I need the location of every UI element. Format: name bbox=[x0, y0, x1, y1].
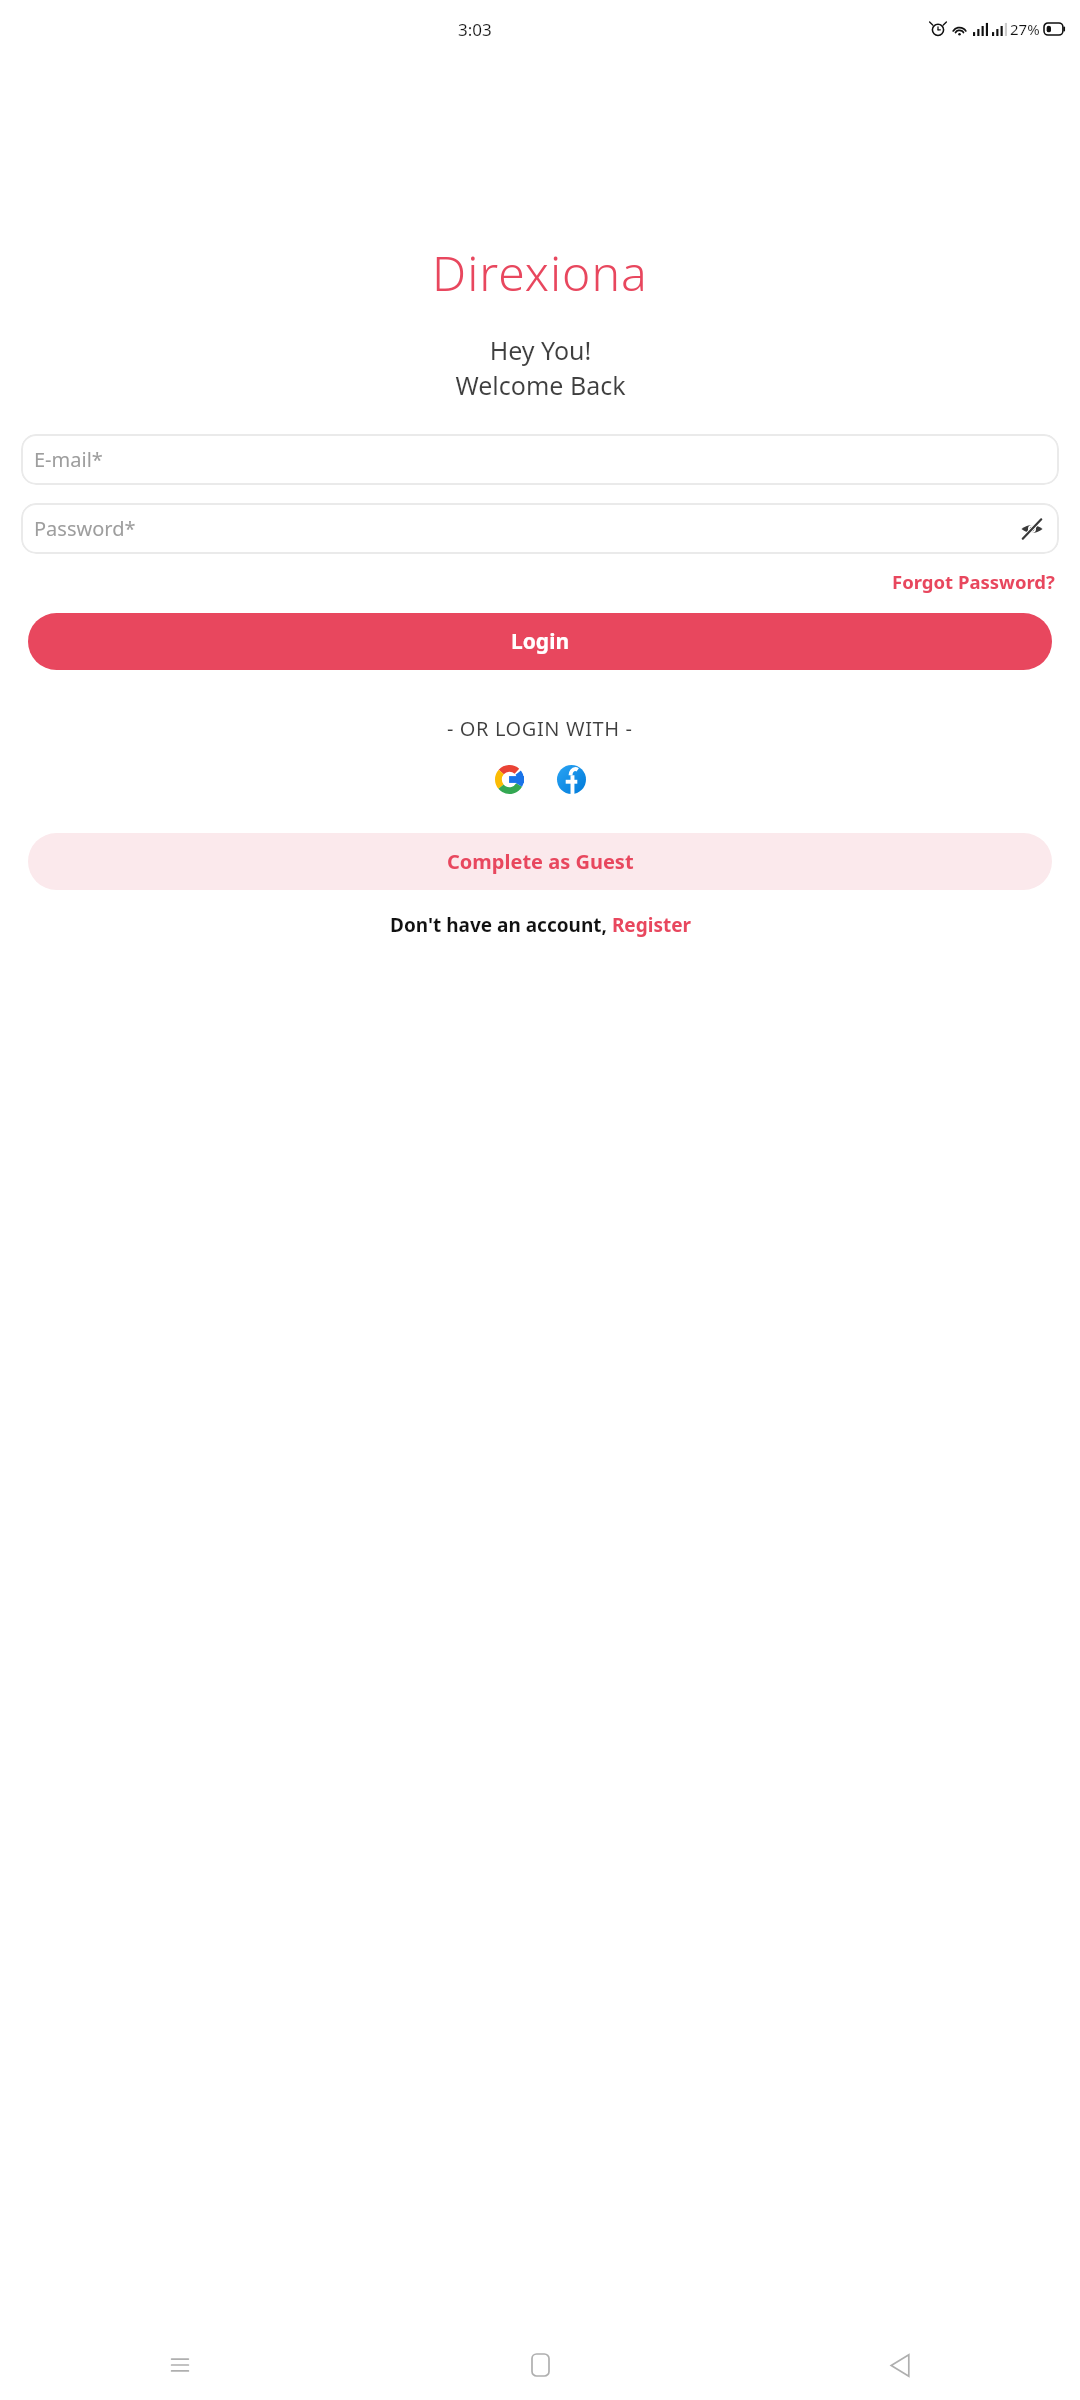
button[interactable]: Recent apps bbox=[0, 2330, 360, 2400]
staticText: Complete as Guest bbox=[447, 848, 634, 875]
button[interactable]: Forgot Password? bbox=[888, 565, 1059, 598]
staticText: 3:03 bbox=[458, 18, 492, 41]
staticText: Password* bbox=[34, 515, 136, 542]
staticText: 27% bbox=[1010, 19, 1040, 39]
button[interactable]: Complete as Guest bbox=[28, 833, 1052, 890]
button[interactable]: Sign in with Google bbox=[491, 761, 528, 798]
button[interactable]: Show password bbox=[1017, 514, 1047, 544]
button[interactable]: Back bbox=[720, 2330, 1080, 2400]
staticText: Forgot Password? bbox=[892, 569, 1055, 594]
button[interactable]: Home bbox=[360, 2330, 720, 2400]
staticText: E-mail* bbox=[34, 446, 103, 473]
staticText: Don't have an account, Register bbox=[390, 912, 691, 938]
button[interactable]: Don't have an account, Register bbox=[384, 908, 697, 942]
button[interactable]: E-mail* bbox=[21, 434, 1059, 485]
button[interactable]: Login bbox=[28, 613, 1052, 670]
button[interactable]: Sign in with Facebook bbox=[553, 761, 590, 798]
staticText: Login bbox=[511, 627, 570, 656]
staticText: Hey You! Welcome Back bbox=[455, 333, 626, 403]
staticText: - OR LOGIN WITH - bbox=[447, 715, 633, 742]
staticText: Direxiona bbox=[432, 240, 648, 305]
button[interactable]: Password* bbox=[21, 503, 1059, 554]
